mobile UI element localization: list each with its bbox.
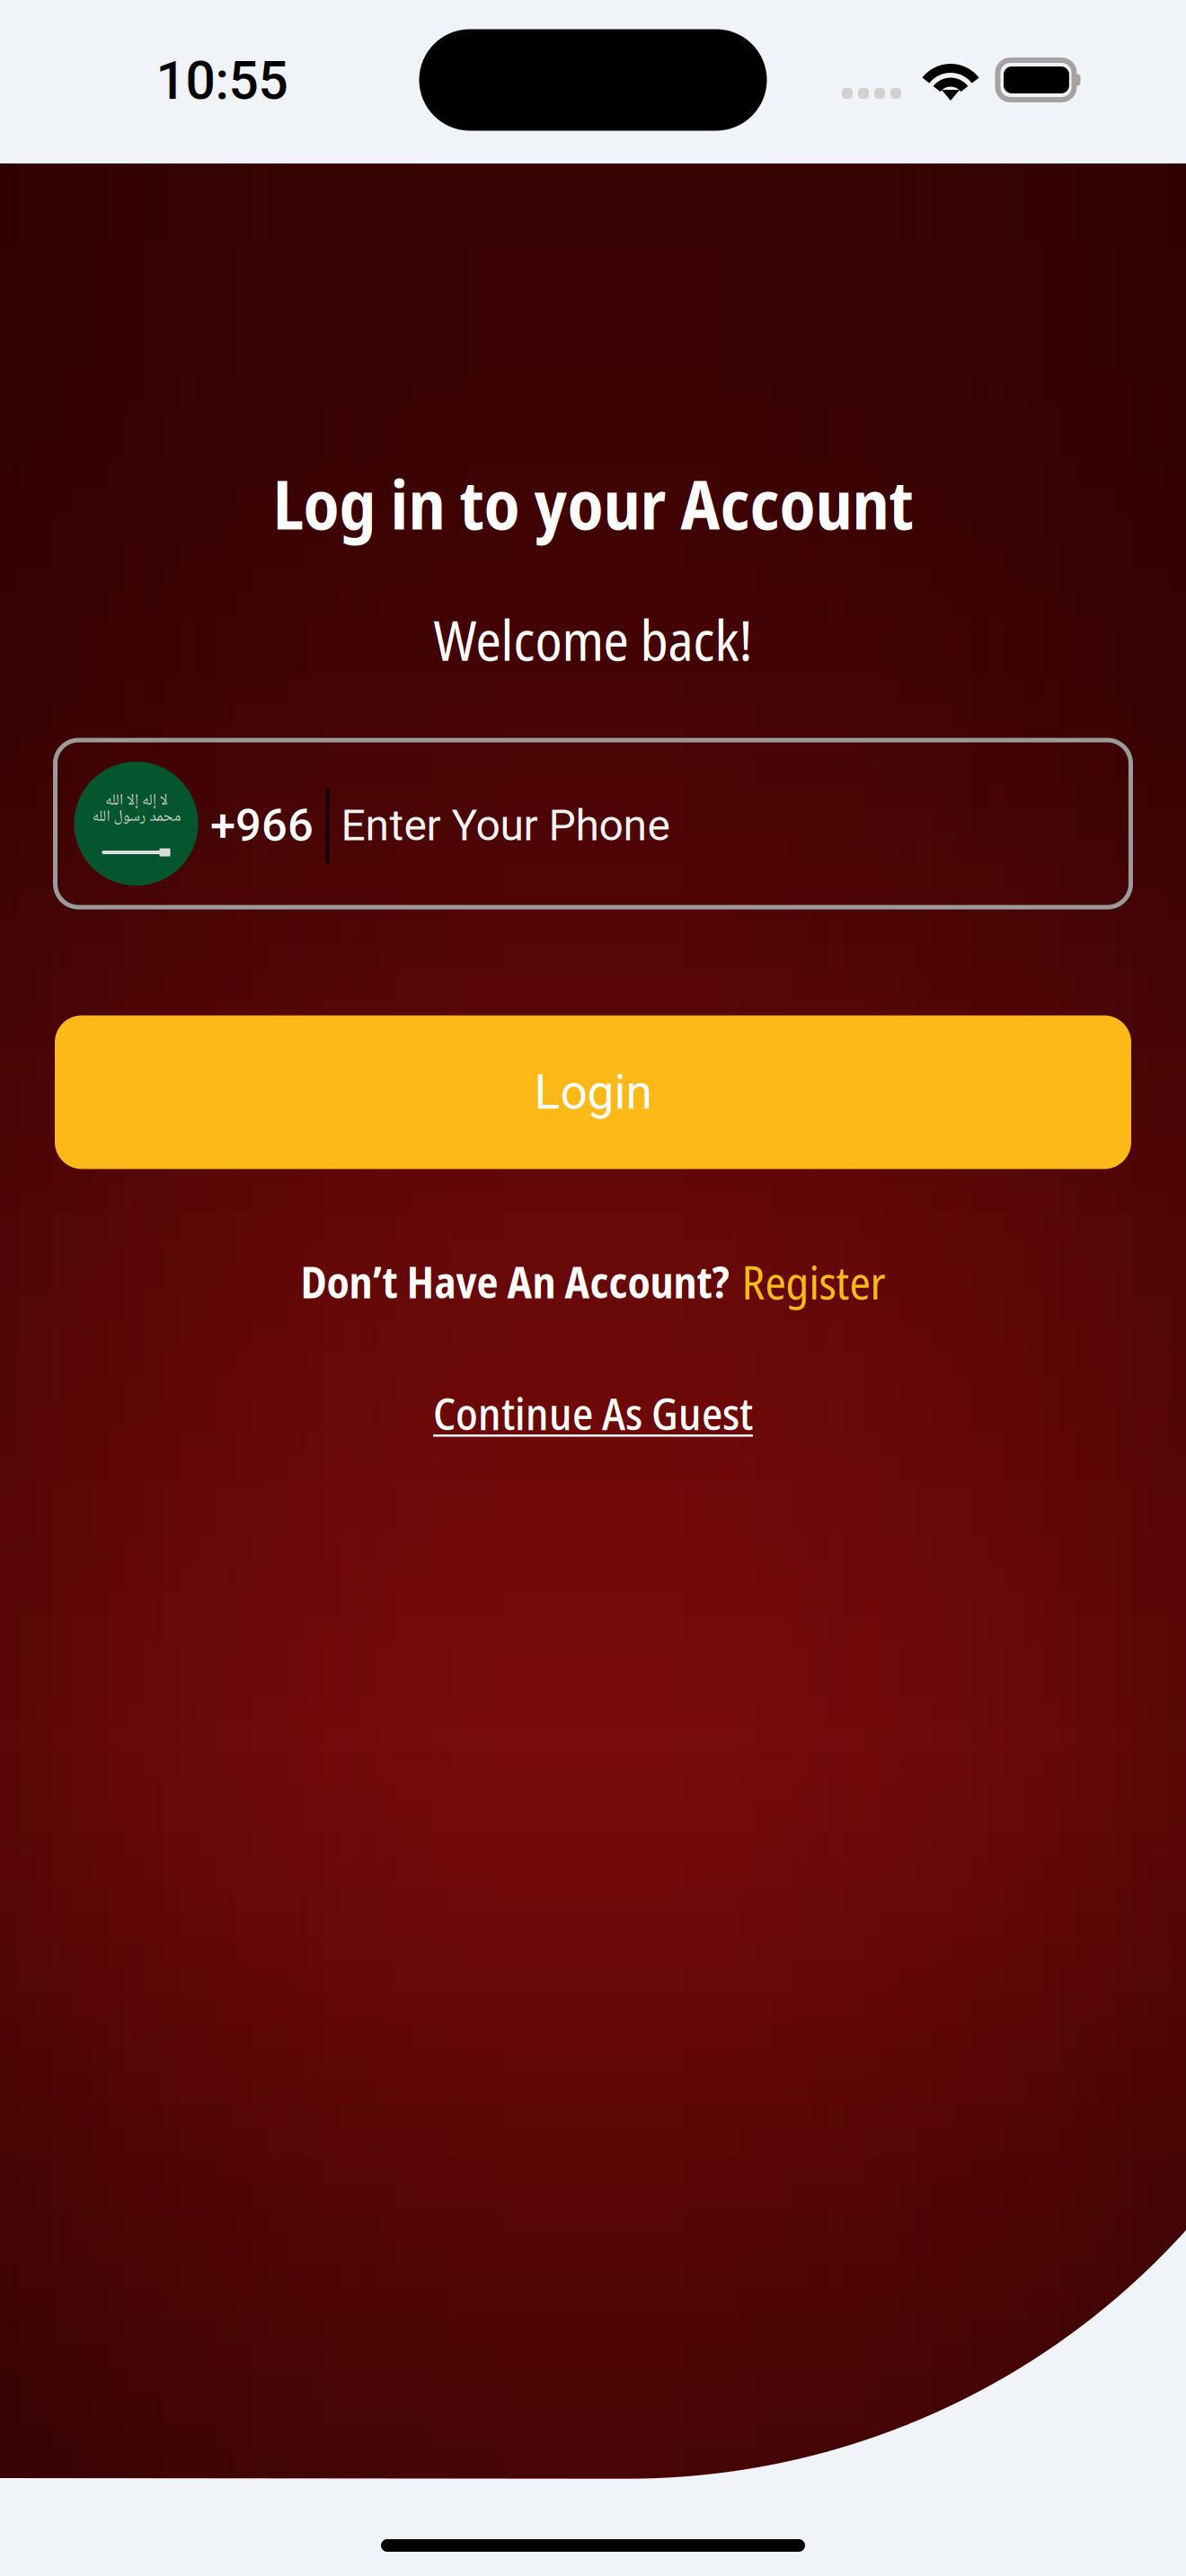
button[interactable]: Don’t Have An Account? <box>301 1251 885 1313</box>
staticText: لا إله إلا الله <box>105 788 168 814</box>
staticText: Enter Your Phone <box>341 800 670 851</box>
staticText: Don’t Have An Account? <box>301 1252 729 1311</box>
staticText: Login <box>534 1064 652 1120</box>
staticText: Welcome back! <box>434 602 752 677</box>
staticText: Register <box>742 1251 885 1313</box>
staticText: +966 <box>210 799 314 852</box>
staticText: Log in to your Account <box>273 456 913 549</box>
staticText: 10:55 <box>156 50 288 112</box>
button[interactable]: Login <box>55 1015 1131 1169</box>
button[interactable]: Continue As Guest <box>433 1383 753 1443</box>
staticText: Continue As Guest <box>433 1383 753 1443</box>
staticText: محمد رسول الله <box>92 804 181 831</box>
